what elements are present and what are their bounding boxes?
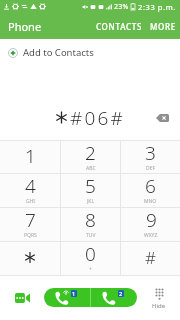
button[interactable]: 1	[0, 141, 60, 173]
staticText: Phone	[8, 19, 42, 34]
staticText: Hide	[152, 302, 166, 310]
button[interactable]: 4	[0, 174, 60, 207]
staticText: #06#	[70, 105, 126, 131]
button[interactable]: Add to Contacts	[0, 39, 180, 66]
staticText: 2	[119, 290, 123, 297]
staticText: 3	[145, 140, 156, 166]
staticText: JKL	[87, 198, 95, 205]
button[interactable]: 2	[61, 141, 120, 173]
staticText: PQRS	[24, 232, 37, 239]
staticText: 7	[25, 207, 36, 233]
staticText: GHI	[26, 198, 36, 205]
staticText: 8	[85, 207, 96, 233]
button[interactable]: #	[121, 242, 180, 275]
button[interactable]: 5	[61, 174, 120, 207]
staticText: DEF	[146, 165, 156, 171]
staticText: CONTACTS	[96, 21, 142, 32]
staticText: 0	[85, 241, 96, 267]
button[interactable]: Hide	[136, 276, 180, 320]
staticText: MNO	[144, 198, 157, 205]
button[interactable]: Call with SIM 2	[91, 288, 137, 307]
button[interactable]: MORE	[146, 16, 180, 37]
staticText: #	[145, 246, 156, 269]
button[interactable]: Video call	[0, 276, 44, 320]
button[interactable]: 7	[0, 208, 60, 241]
staticText: 1	[25, 143, 36, 169]
button[interactable]: 9	[121, 208, 180, 241]
button[interactable]: 3	[121, 141, 180, 173]
staticText: 1	[72, 290, 76, 297]
staticText: MORE	[150, 21, 176, 32]
staticText: 4	[25, 173, 36, 199]
staticText: +	[89, 266, 92, 273]
staticText: 23%	[114, 2, 129, 12]
staticText: 9	[146, 207, 157, 233]
button[interactable]: 8	[61, 208, 120, 241]
button[interactable]: 0	[61, 242, 120, 275]
button[interactable]: Backspace	[152, 108, 172, 128]
staticText: Add to Contacts	[23, 46, 94, 59]
button[interactable]: 6	[121, 174, 180, 207]
staticText: WXYZ	[144, 232, 158, 239]
button[interactable]: CONTACTS	[92, 16, 146, 37]
staticText: 2:33 p.m.	[138, 2, 176, 12]
staticText: 6	[145, 173, 156, 199]
staticText: TUV	[86, 232, 96, 239]
staticText: 5	[85, 173, 96, 199]
staticText: ABC	[86, 165, 96, 171]
staticText: 2	[85, 140, 96, 166]
button[interactable]	[0, 242, 60, 275]
button[interactable]: Call with SIM 1	[44, 288, 90, 307]
